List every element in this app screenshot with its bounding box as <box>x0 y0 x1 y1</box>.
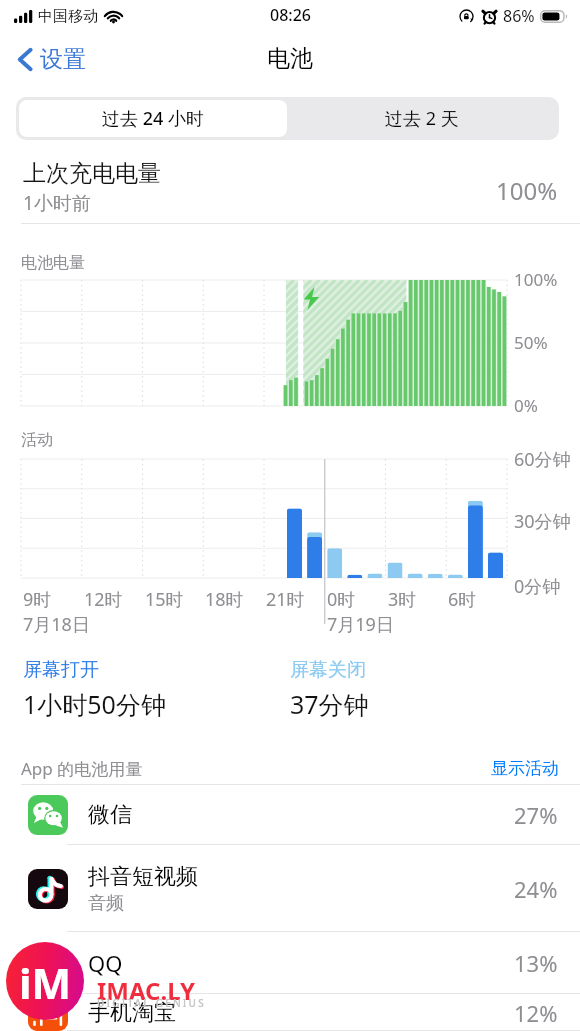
staticText: IMAC.LY <box>97 974 195 1007</box>
button[interactable]: 抖音短视频 <box>0 845 580 932</box>
button[interactable]: 过去 24 小时 <box>19 100 287 137</box>
staticText: 屏幕关闭 <box>290 658 366 682</box>
staticText: 6时 <box>448 587 477 612</box>
staticText: 屏幕打开 <box>23 658 99 682</box>
staticText: 7月19日 <box>327 612 394 637</box>
staticText: 微信 <box>88 801 132 829</box>
staticText: App 的电池用量 <box>21 757 491 780</box>
staticText: 37分钟 <box>290 687 369 721</box>
staticText: 抖音短视频 <box>88 863 198 891</box>
staticText: 7月18日 <box>23 612 90 637</box>
staticText: 18时 <box>205 587 244 612</box>
staticText: 50% <box>514 331 548 354</box>
button[interactable]: 手机淘宝 <box>0 994 580 1031</box>
staticText: 中国移动 <box>38 7 98 26</box>
button[interactable]: 过去 2 天 <box>287 100 556 137</box>
staticText: 24% <box>514 874 558 904</box>
staticText: 电池电量 <box>21 253 85 273</box>
staticText: 设置 <box>40 45 86 74</box>
staticText: 12时 <box>84 587 123 612</box>
staticText: 27% <box>514 800 558 830</box>
staticText: 100% <box>514 268 558 291</box>
staticText: DIGITAL GENIUS <box>97 996 206 1010</box>
staticText: 60分钟 <box>514 447 571 472</box>
staticText: 活动 <box>21 430 53 450</box>
staticText: 显示活动 <box>491 758 559 779</box>
staticText: 12% <box>514 998 558 1028</box>
staticText: 100% <box>496 174 558 207</box>
staticText: 电池 <box>267 44 313 73</box>
staticText: 0% <box>514 394 538 417</box>
staticText: 1小时前 <box>23 190 91 216</box>
staticText: iM <box>19 954 72 1011</box>
staticText: 0时 <box>327 587 356 612</box>
staticText: 音频 <box>88 892 124 915</box>
staticText: 15时 <box>145 587 184 612</box>
staticText: 0分钟 <box>514 574 561 599</box>
staticText: 86% <box>503 5 535 27</box>
staticText: 上次充电电量 <box>23 159 161 188</box>
button[interactable]: 设置 <box>0 39 96 88</box>
staticText: 手机淘宝 <box>88 999 176 1027</box>
staticText: 30分钟 <box>514 509 571 534</box>
staticText: 过去 2 天 <box>385 106 459 131</box>
staticText: 08:26 <box>270 4 311 26</box>
button[interactable]: 微信 <box>0 784 580 845</box>
staticText: 1小时50分钟 <box>23 687 166 721</box>
staticText: 9时 <box>23 587 52 612</box>
staticText: 过去 24 小时 <box>102 106 204 131</box>
button[interactable]: QQ <box>0 932 580 994</box>
staticText: 21时 <box>266 587 305 612</box>
staticText: 3时 <box>388 587 417 612</box>
staticText: QQ <box>88 948 123 978</box>
staticText: 13% <box>514 948 558 978</box>
button[interactable]: 显示活动 <box>491 758 559 779</box>
